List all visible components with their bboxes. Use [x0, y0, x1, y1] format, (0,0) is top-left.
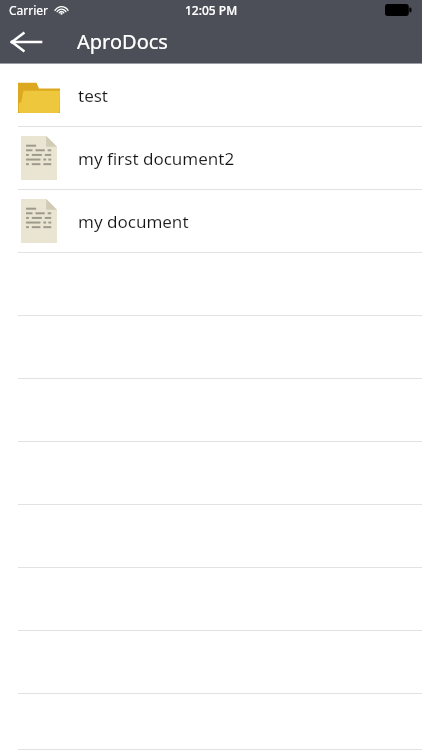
- staticText: my first document2: [78, 147, 235, 170]
- staticText: 12:05 PM: [185, 2, 238, 18]
- button[interactable]: my first document2: [0, 127, 422, 190]
- button[interactable]: my document: [0, 190, 422, 253]
- staticText: my document: [78, 210, 189, 233]
- staticText: AproDocs: [77, 28, 168, 55]
- staticText: test: [78, 84, 109, 107]
- button[interactable]: test: [0, 64, 422, 127]
- button[interactable]: Back: [0, 20, 52, 63]
- staticText: Carrier: [9, 2, 49, 18]
